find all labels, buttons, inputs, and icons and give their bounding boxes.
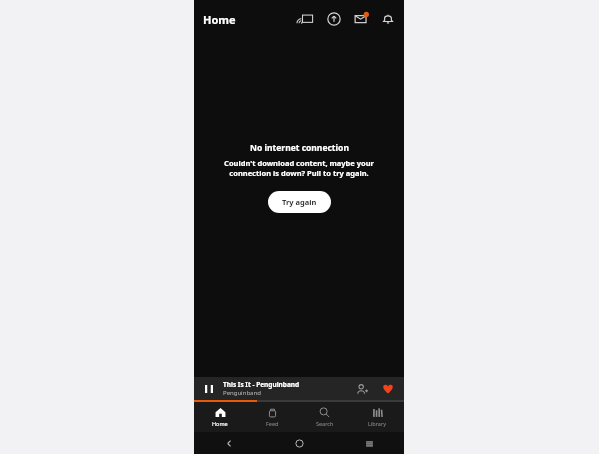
staticText: Feed — [266, 420, 279, 427]
staticText: Couldn't download content, maybe your co… — [204, 158, 394, 178]
button[interactable]: Pause — [194, 377, 404, 402]
button[interactable]: Recent apps — [334, 432, 404, 454]
button[interactable]: Feed — [246, 402, 298, 432]
button[interactable]: Back — [194, 432, 264, 454]
button[interactable]: Downloads — [325, 10, 343, 28]
button[interactable]: Pause — [202, 382, 216, 396]
button[interactable]: Try again — [268, 191, 331, 213]
staticText: Penguinband — [223, 389, 261, 397]
button[interactable]: Cast — [298, 10, 316, 28]
staticText: Home — [212, 420, 228, 427]
staticText: Try again — [282, 197, 317, 207]
button[interactable]: Like — [380, 381, 396, 397]
button[interactable]: Inbox — [352, 10, 370, 28]
button[interactable]: Notifications — [379, 10, 397, 28]
button[interactable]: Add to playlist — [354, 381, 370, 397]
staticText: Library — [368, 420, 387, 427]
button[interactable]: Home — [264, 432, 334, 454]
button[interactable]: Search — [298, 402, 351, 432]
staticText: Home — [203, 12, 236, 27]
button[interactable]: Home — [194, 402, 246, 432]
button[interactable]: Library — [351, 402, 404, 432]
staticText: This Is It - Penguinband — [223, 380, 300, 389]
staticText: Search — [316, 420, 334, 427]
staticText: No internet connection — [250, 142, 349, 154]
